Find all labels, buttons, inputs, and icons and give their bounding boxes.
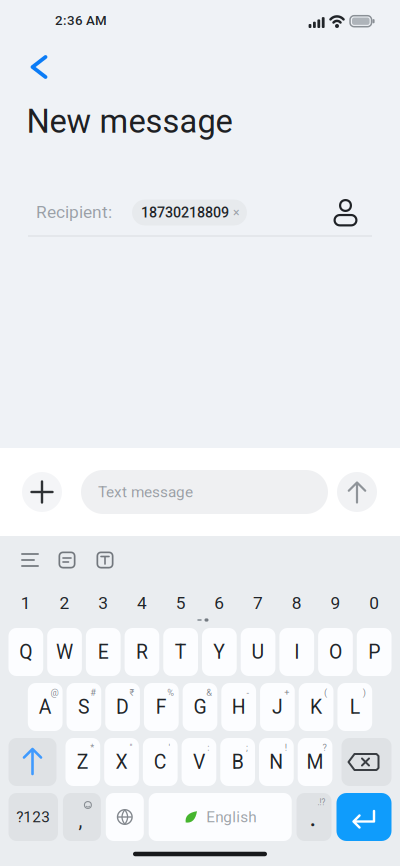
staticText: Q — [19, 641, 32, 663]
staticText: 9 — [330, 593, 340, 613]
button[interactable]: T — [163, 628, 198, 676]
button[interactable]: W — [47, 628, 82, 676]
staticText: Y — [213, 641, 225, 663]
button[interactable]: P — [357, 628, 391, 676]
button[interactable]: 6 — [202, 588, 237, 618]
button[interactable]: E — [86, 628, 121, 676]
staticText: 4 — [137, 593, 147, 613]
button[interactable]: 0 — [357, 588, 391, 618]
staticText: 6 — [214, 593, 224, 613]
staticText: New message — [26, 102, 232, 141]
button[interactable]: 2 — [47, 588, 82, 618]
button[interactable]: D — [105, 683, 140, 731]
staticText: A — [39, 696, 52, 718]
staticText: : — [207, 742, 209, 753]
staticText: - — [247, 687, 250, 698]
staticText: O — [329, 641, 342, 663]
button[interactable]: 8 — [279, 588, 314, 618]
button[interactable]: R — [125, 628, 159, 676]
button[interactable]: G — [183, 683, 217, 731]
button[interactable]: L — [337, 683, 372, 731]
staticText: 1 — [21, 593, 31, 613]
button[interactable]: Q — [8, 628, 43, 676]
button[interactable]: English — [149, 793, 292, 841]
button[interactable]: 4 — [125, 588, 159, 618]
staticText: @ — [51, 687, 59, 698]
button[interactable]: Text message — [81, 470, 328, 514]
button[interactable] — [333, 199, 357, 227]
button[interactable]: 18730218809 — [132, 199, 247, 225]
staticText: & — [206, 687, 212, 698]
staticText: M — [307, 751, 324, 773]
button[interactable]: ?123 — [8, 793, 58, 841]
button[interactable]: I — [279, 628, 314, 676]
staticText: 7 — [253, 593, 263, 613]
staticText: 5 — [176, 593, 186, 613]
staticText: # — [90, 687, 96, 698]
staticText: English — [206, 808, 256, 826]
staticText: U — [252, 641, 265, 663]
staticText: 0 — [369, 593, 379, 613]
staticText: ' — [169, 742, 171, 753]
staticText: Recipient: — [36, 202, 112, 222]
button[interactable] — [21, 553, 39, 567]
button[interactable] — [96, 551, 113, 568]
button[interactable]: Z — [65, 738, 100, 786]
button[interactable] — [341, 738, 391, 786]
button[interactable] — [28, 55, 52, 79]
button[interactable]: 1 — [8, 588, 43, 618]
staticText: Text message — [98, 483, 193, 501]
button[interactable]: 9 — [318, 588, 353, 618]
staticText: H — [232, 696, 246, 718]
staticText: X — [115, 751, 127, 773]
staticText: ) — [363, 687, 366, 698]
button[interactable]: S — [67, 683, 101, 731]
button[interactable]: 3 — [86, 588, 121, 618]
staticText: % — [167, 687, 174, 698]
staticText: 8 — [292, 593, 302, 613]
staticText: R — [136, 641, 148, 663]
staticText: ₹ — [129, 687, 134, 698]
staticText: 2 — [60, 593, 70, 613]
button[interactable] — [8, 738, 56, 786]
staticText: G — [193, 696, 206, 718]
staticText: D — [116, 696, 129, 718]
button[interactable]: H — [221, 683, 256, 731]
button[interactable]: X — [104, 738, 139, 786]
staticText: ?123 — [16, 808, 50, 826]
staticText: ! — [285, 742, 287, 753]
button[interactable] — [58, 551, 75, 568]
staticText: ( — [324, 687, 327, 698]
staticText: ; — [246, 742, 248, 753]
staticText: E — [98, 641, 109, 663]
staticText: * — [90, 742, 94, 753]
button[interactable]: U — [241, 628, 275, 676]
staticText: Z — [77, 751, 89, 773]
button[interactable] — [337, 472, 377, 512]
button[interactable]: C — [143, 738, 178, 786]
staticText: F — [156, 696, 167, 718]
button[interactable]: F — [144, 683, 179, 731]
button[interactable]: J — [260, 683, 295, 731]
button[interactable]: V — [182, 738, 216, 786]
staticText: L — [350, 696, 360, 718]
staticText: . — [310, 808, 316, 831]
button[interactable]: 5 — [163, 588, 198, 618]
button[interactable] — [336, 793, 391, 841]
staticText: P — [368, 641, 380, 663]
button[interactable]: 7 — [241, 588, 275, 618]
staticText: W — [56, 641, 73, 663]
button[interactable]: K — [299, 683, 333, 731]
button[interactable]: Y — [202, 628, 237, 676]
button[interactable]: M — [298, 738, 332, 786]
button[interactable]: B — [220, 738, 255, 786]
staticText: V — [193, 751, 205, 773]
button[interactable]: A — [28, 683, 63, 731]
button[interactable] — [22, 472, 62, 512]
button[interactable] — [106, 793, 144, 841]
button[interactable]: . — [296, 793, 331, 841]
button[interactable]: , — [63, 793, 101, 841]
button[interactable]: N — [259, 738, 294, 786]
button[interactable]: O — [318, 628, 353, 676]
staticText: N — [269, 751, 283, 773]
